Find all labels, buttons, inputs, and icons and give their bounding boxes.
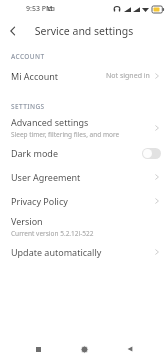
staticText: Mi Account [11, 70, 59, 82]
button[interactable]: Dark mode toggle [142, 148, 161, 159]
button[interactable]: Dark mode [0, 141, 168, 165]
button[interactable]: Advanced settings [0, 114, 168, 141]
staticText: Advanced settings [11, 116, 89, 128]
button[interactable]: Recents [24, 335, 52, 363]
staticText: Sleep timer, filtering files, and more [11, 130, 120, 139]
button[interactable]: Home [70, 335, 98, 363]
staticText: Not signed in [106, 71, 150, 81]
button[interactable]: User Agreement [0, 165, 168, 189]
staticText: Privacy Policy [11, 195, 68, 207]
staticText: 9:53 PM [26, 4, 53, 14]
button[interactable]: Update automatically [0, 240, 168, 264]
staticText: Dark mode [11, 147, 58, 159]
staticText: User Agreement [11, 171, 81, 183]
button[interactable]: Version [0, 213, 168, 240]
button[interactable]: Back [0, 18, 26, 44]
button[interactable]: Mi Account [0, 64, 168, 88]
staticText: Update automatically [11, 246, 102, 258]
staticText: Version [11, 215, 43, 227]
staticText: SETTINGS [11, 102, 45, 111]
button[interactable]: Back [116, 335, 144, 363]
staticText: Service and settings [0, 24, 168, 38]
staticText: ACCOUNT [11, 52, 45, 61]
button[interactable]: Privacy Policy [0, 189, 168, 213]
staticText: Current version 5.2.12l-522 [11, 229, 94, 238]
